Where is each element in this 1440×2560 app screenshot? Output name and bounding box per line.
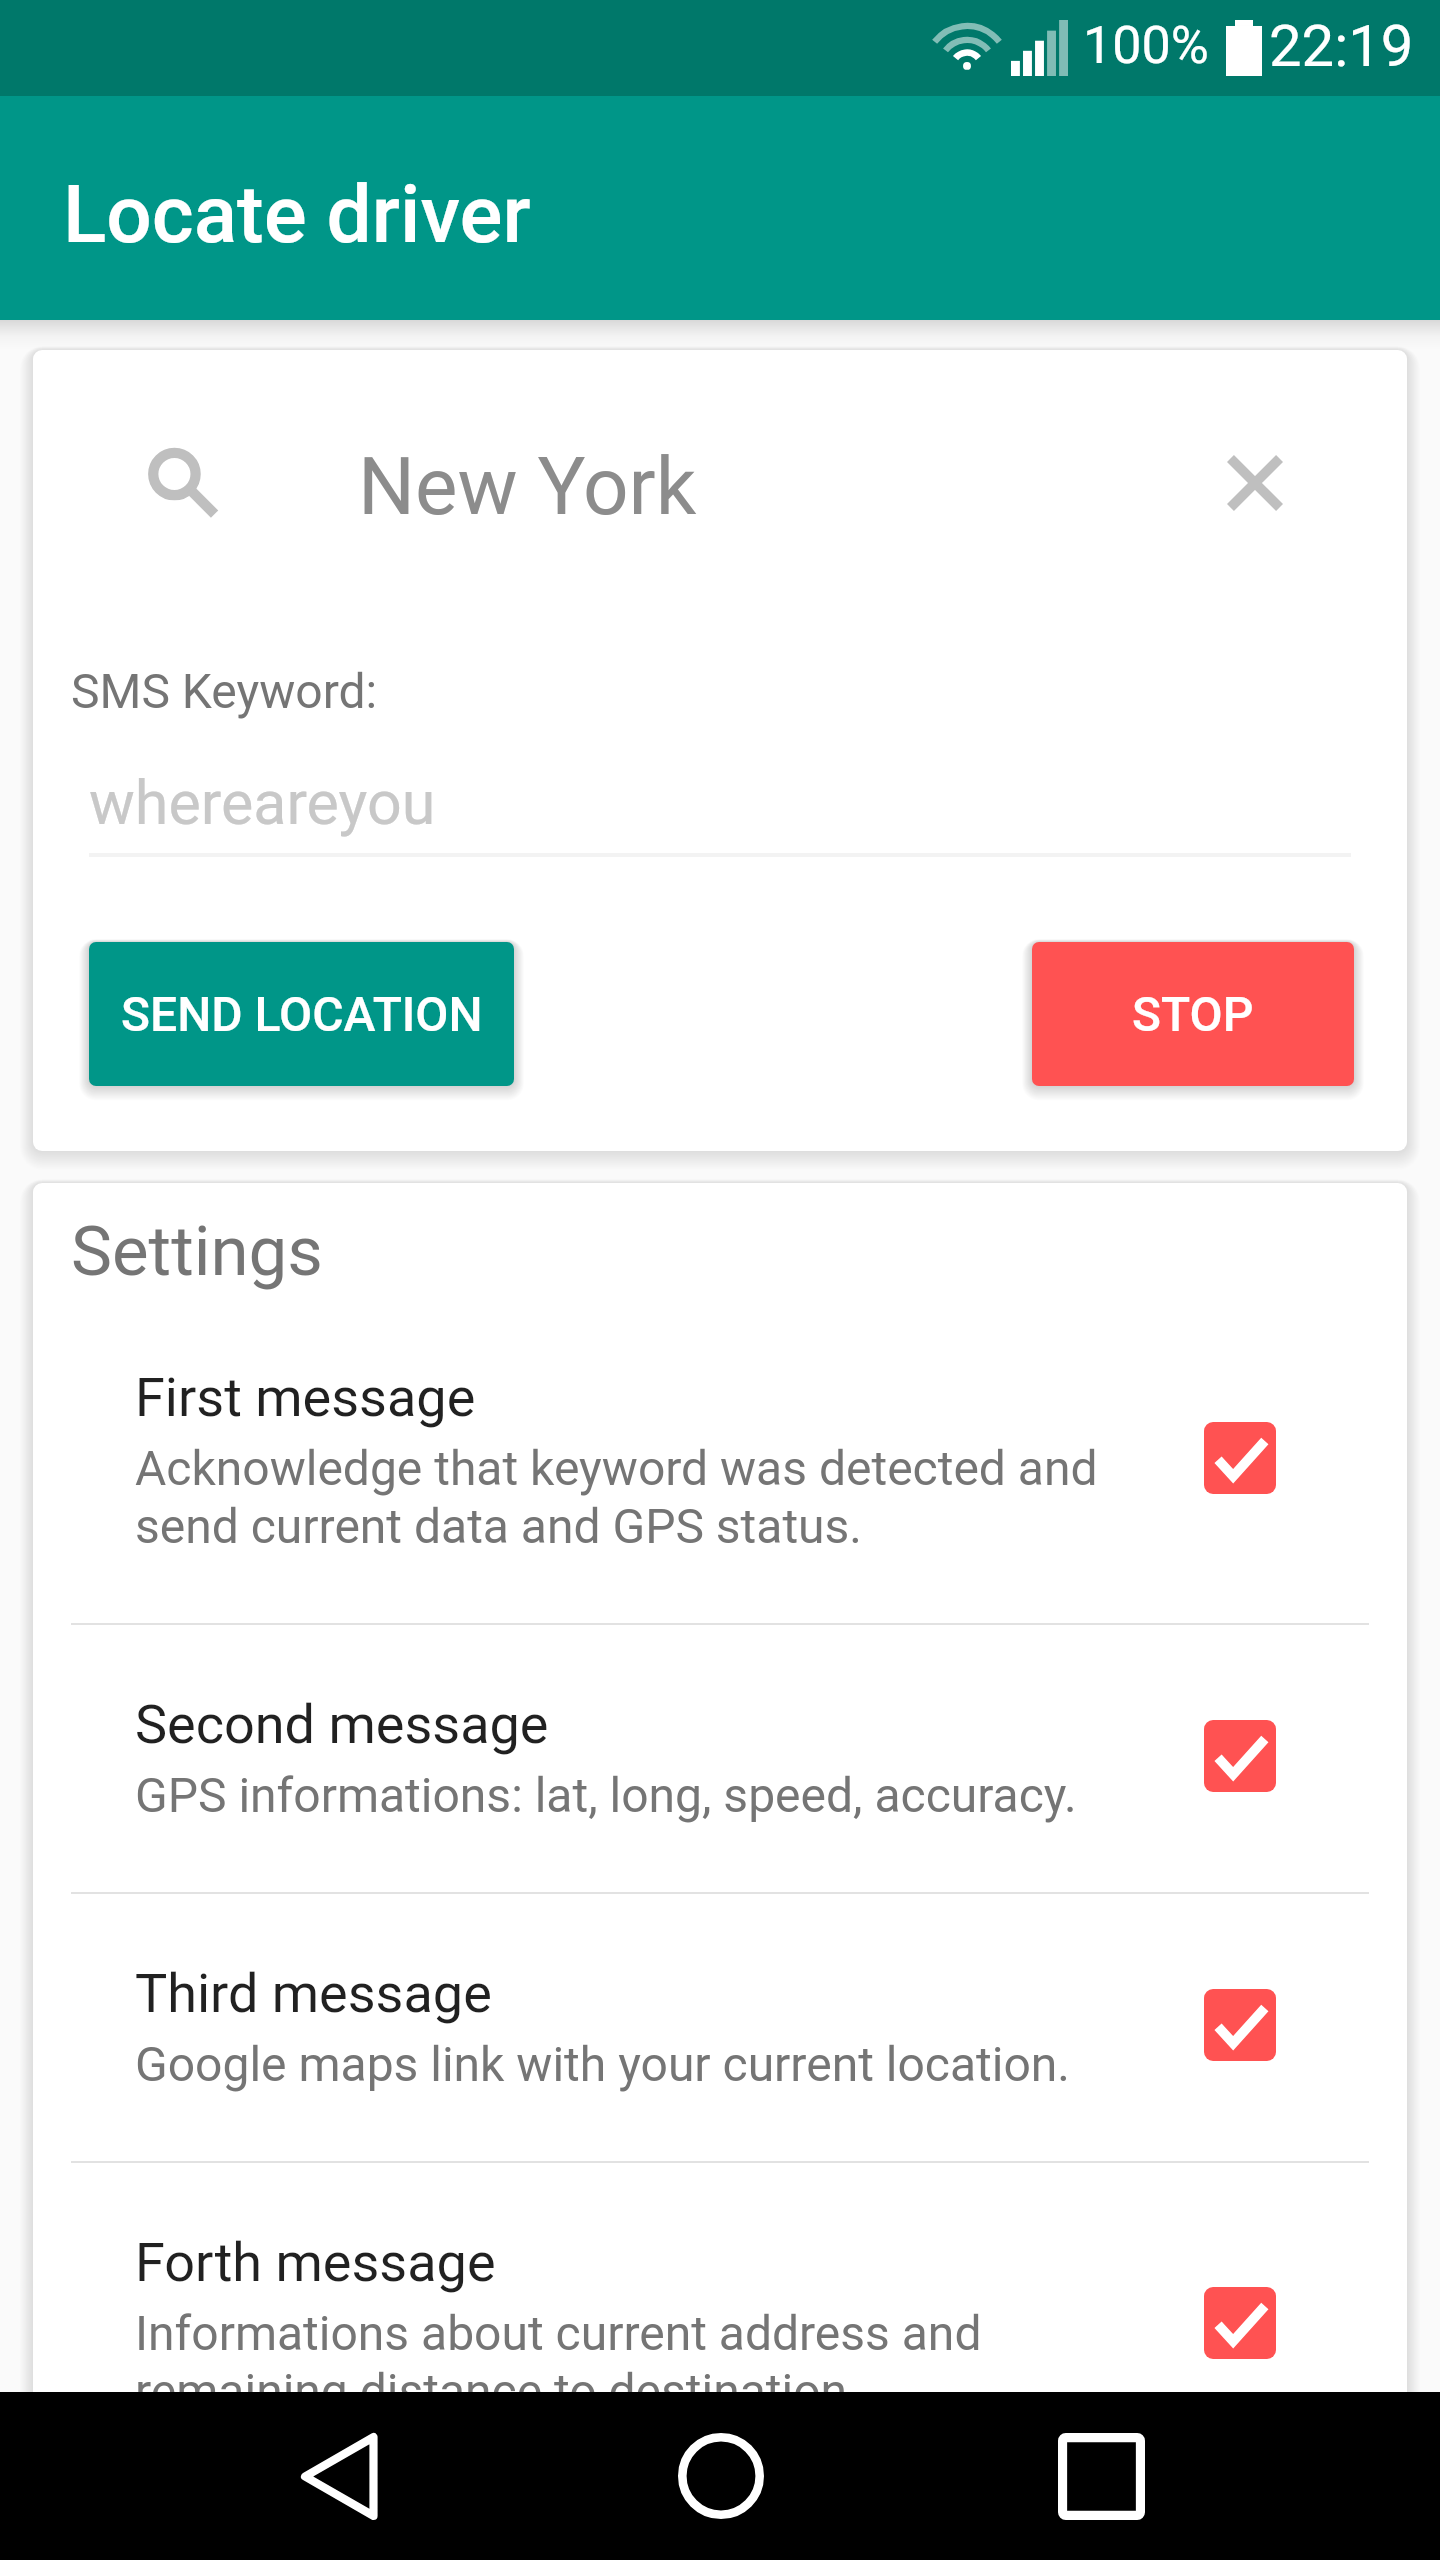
button[interactable]: STOP bbox=[1032, 942, 1354, 1086]
button[interactable]: Second message bbox=[33, 1625, 1407, 1892]
staticText: Informations about current address and r… bbox=[135, 2304, 1135, 2420]
staticText: First message bbox=[135, 1366, 476, 1429]
staticText: SEND LOCATION bbox=[121, 986, 483, 1042]
staticText: Locate driver bbox=[63, 168, 531, 262]
staticText: STOP bbox=[1132, 986, 1254, 1042]
staticText: Settings bbox=[71, 1211, 323, 1292]
button[interactable]: New York bbox=[33, 350, 1407, 663]
button[interactable]: First message bbox=[33, 1298, 1407, 1623]
button[interactable]: Toggle message bbox=[1204, 1989, 1276, 2061]
staticText: whereareyou bbox=[89, 767, 436, 838]
staticText: Third message bbox=[135, 1962, 492, 2025]
staticText: New York bbox=[358, 440, 697, 534]
staticText: Second message bbox=[135, 1693, 549, 1756]
button[interactable]: Forth message bbox=[33, 2163, 1407, 2488]
button[interactable]: Recents bbox=[959, 2392, 1243, 2560]
button[interactable]: SEND LOCATION bbox=[89, 942, 514, 1086]
button[interactable]: Clear bbox=[1210, 438, 1300, 528]
button[interactable]: Back bbox=[197, 2392, 481, 2560]
staticText: Forth message bbox=[135, 2231, 496, 2294]
staticText: SMS Keyword: bbox=[71, 663, 378, 719]
staticText: Acknowledge that keyword was detected an… bbox=[135, 1439, 1135, 1555]
button[interactable]: Third message bbox=[33, 1894, 1407, 2161]
staticText: 100% bbox=[1083, 15, 1209, 76]
staticText: GPS informations: lat, long, speed, accu… bbox=[135, 1766, 1077, 1824]
staticText: 22:19 bbox=[1269, 12, 1414, 80]
button[interactable]: Toggle message bbox=[1204, 2287, 1276, 2359]
button[interactable]: Toggle message bbox=[1204, 1720, 1276, 1792]
button[interactable]: Toggle message bbox=[1204, 1422, 1276, 1494]
button[interactable]: Home bbox=[579, 2392, 863, 2560]
staticText: Google maps link with your current locat… bbox=[135, 2035, 1070, 2093]
